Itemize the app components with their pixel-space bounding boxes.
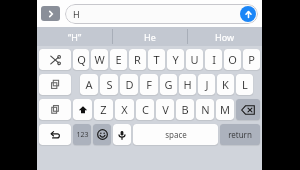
button[interactable]: W xyxy=(91,49,108,70)
staticText: A xyxy=(85,77,93,92)
button[interactable]: space xyxy=(133,124,218,145)
staticText: Z xyxy=(100,102,107,117)
button[interactable]: C xyxy=(136,99,154,120)
staticText: G xyxy=(164,77,173,92)
button[interactable]: B xyxy=(176,99,194,120)
button[interactable]: Send xyxy=(240,6,256,22)
button[interactable]: Expand xyxy=(41,6,60,21)
button[interactable]: He xyxy=(113,27,187,46)
button[interactable]: G xyxy=(160,74,177,95)
button[interactable]: Z xyxy=(94,99,113,120)
button[interactable]: X xyxy=(115,99,134,120)
staticText: H xyxy=(183,77,192,92)
staticText: return xyxy=(228,129,252,140)
staticText: B xyxy=(181,102,189,117)
staticText: O xyxy=(228,52,237,67)
staticText: X xyxy=(121,102,128,117)
staticText: K xyxy=(222,77,229,92)
button[interactable]: U xyxy=(186,49,203,70)
button[interactable]: Undo xyxy=(39,124,71,145)
staticText: F xyxy=(146,77,152,92)
staticText: “H” xyxy=(68,31,82,43)
button[interactable]: J xyxy=(198,74,215,95)
staticText: Q xyxy=(77,52,86,67)
staticText: V xyxy=(162,102,169,117)
button[interactable]: O xyxy=(224,49,241,70)
button[interactable]: How xyxy=(188,27,262,46)
staticText: M xyxy=(220,102,230,117)
staticText: 123 xyxy=(76,130,89,140)
staticText: H xyxy=(73,8,80,20)
staticText: He xyxy=(144,31,156,43)
staticText: How xyxy=(215,31,235,43)
staticText: E xyxy=(115,52,122,67)
button[interactable]: Paste xyxy=(39,99,71,120)
button[interactable]: E xyxy=(110,49,127,70)
staticText: Y xyxy=(172,52,179,67)
button[interactable]: Cut xyxy=(39,49,71,70)
button[interactable]: S xyxy=(100,74,118,95)
button[interactable]: Copy xyxy=(39,74,71,95)
button[interactable]: N xyxy=(196,99,214,120)
button[interactable]: T xyxy=(148,49,165,70)
staticText: U xyxy=(190,52,199,67)
staticText: R xyxy=(134,52,141,67)
button[interactable]: M xyxy=(216,99,234,120)
button[interactable]: return xyxy=(220,124,260,145)
button[interactable]: 123 xyxy=(73,124,91,145)
button[interactable]: P xyxy=(243,49,260,70)
button[interactable]: K xyxy=(217,74,234,95)
staticText: W xyxy=(94,52,105,67)
staticText: I xyxy=(212,52,216,67)
staticText: J xyxy=(205,77,209,92)
button[interactable]: Y xyxy=(167,49,184,70)
button[interactable]: D xyxy=(120,74,138,95)
button[interactable]: L xyxy=(236,74,253,95)
button[interactable]: F xyxy=(140,74,158,95)
staticText: S xyxy=(106,77,113,92)
button[interactable]: Dictate xyxy=(113,124,131,145)
staticText: D xyxy=(125,77,134,92)
button[interactable]: Shift xyxy=(73,99,92,120)
staticText: N xyxy=(201,102,210,117)
button[interactable]: H xyxy=(179,74,196,95)
button[interactable]: Emoji xyxy=(93,124,111,145)
button[interactable]: I xyxy=(205,49,222,70)
button[interactable]: H xyxy=(65,4,258,24)
button[interactable]: V xyxy=(156,99,174,120)
staticText: space xyxy=(165,129,187,140)
button[interactable]: R xyxy=(129,49,146,70)
button[interactable]: “H” xyxy=(37,27,112,46)
button[interactable]: Backspace xyxy=(236,99,260,120)
staticText: C xyxy=(142,102,149,117)
button[interactable]: Q xyxy=(73,49,89,70)
button[interactable]: A xyxy=(80,74,98,95)
staticText: P xyxy=(248,52,255,67)
staticText: T xyxy=(153,52,160,67)
staticText: L xyxy=(242,77,248,92)
